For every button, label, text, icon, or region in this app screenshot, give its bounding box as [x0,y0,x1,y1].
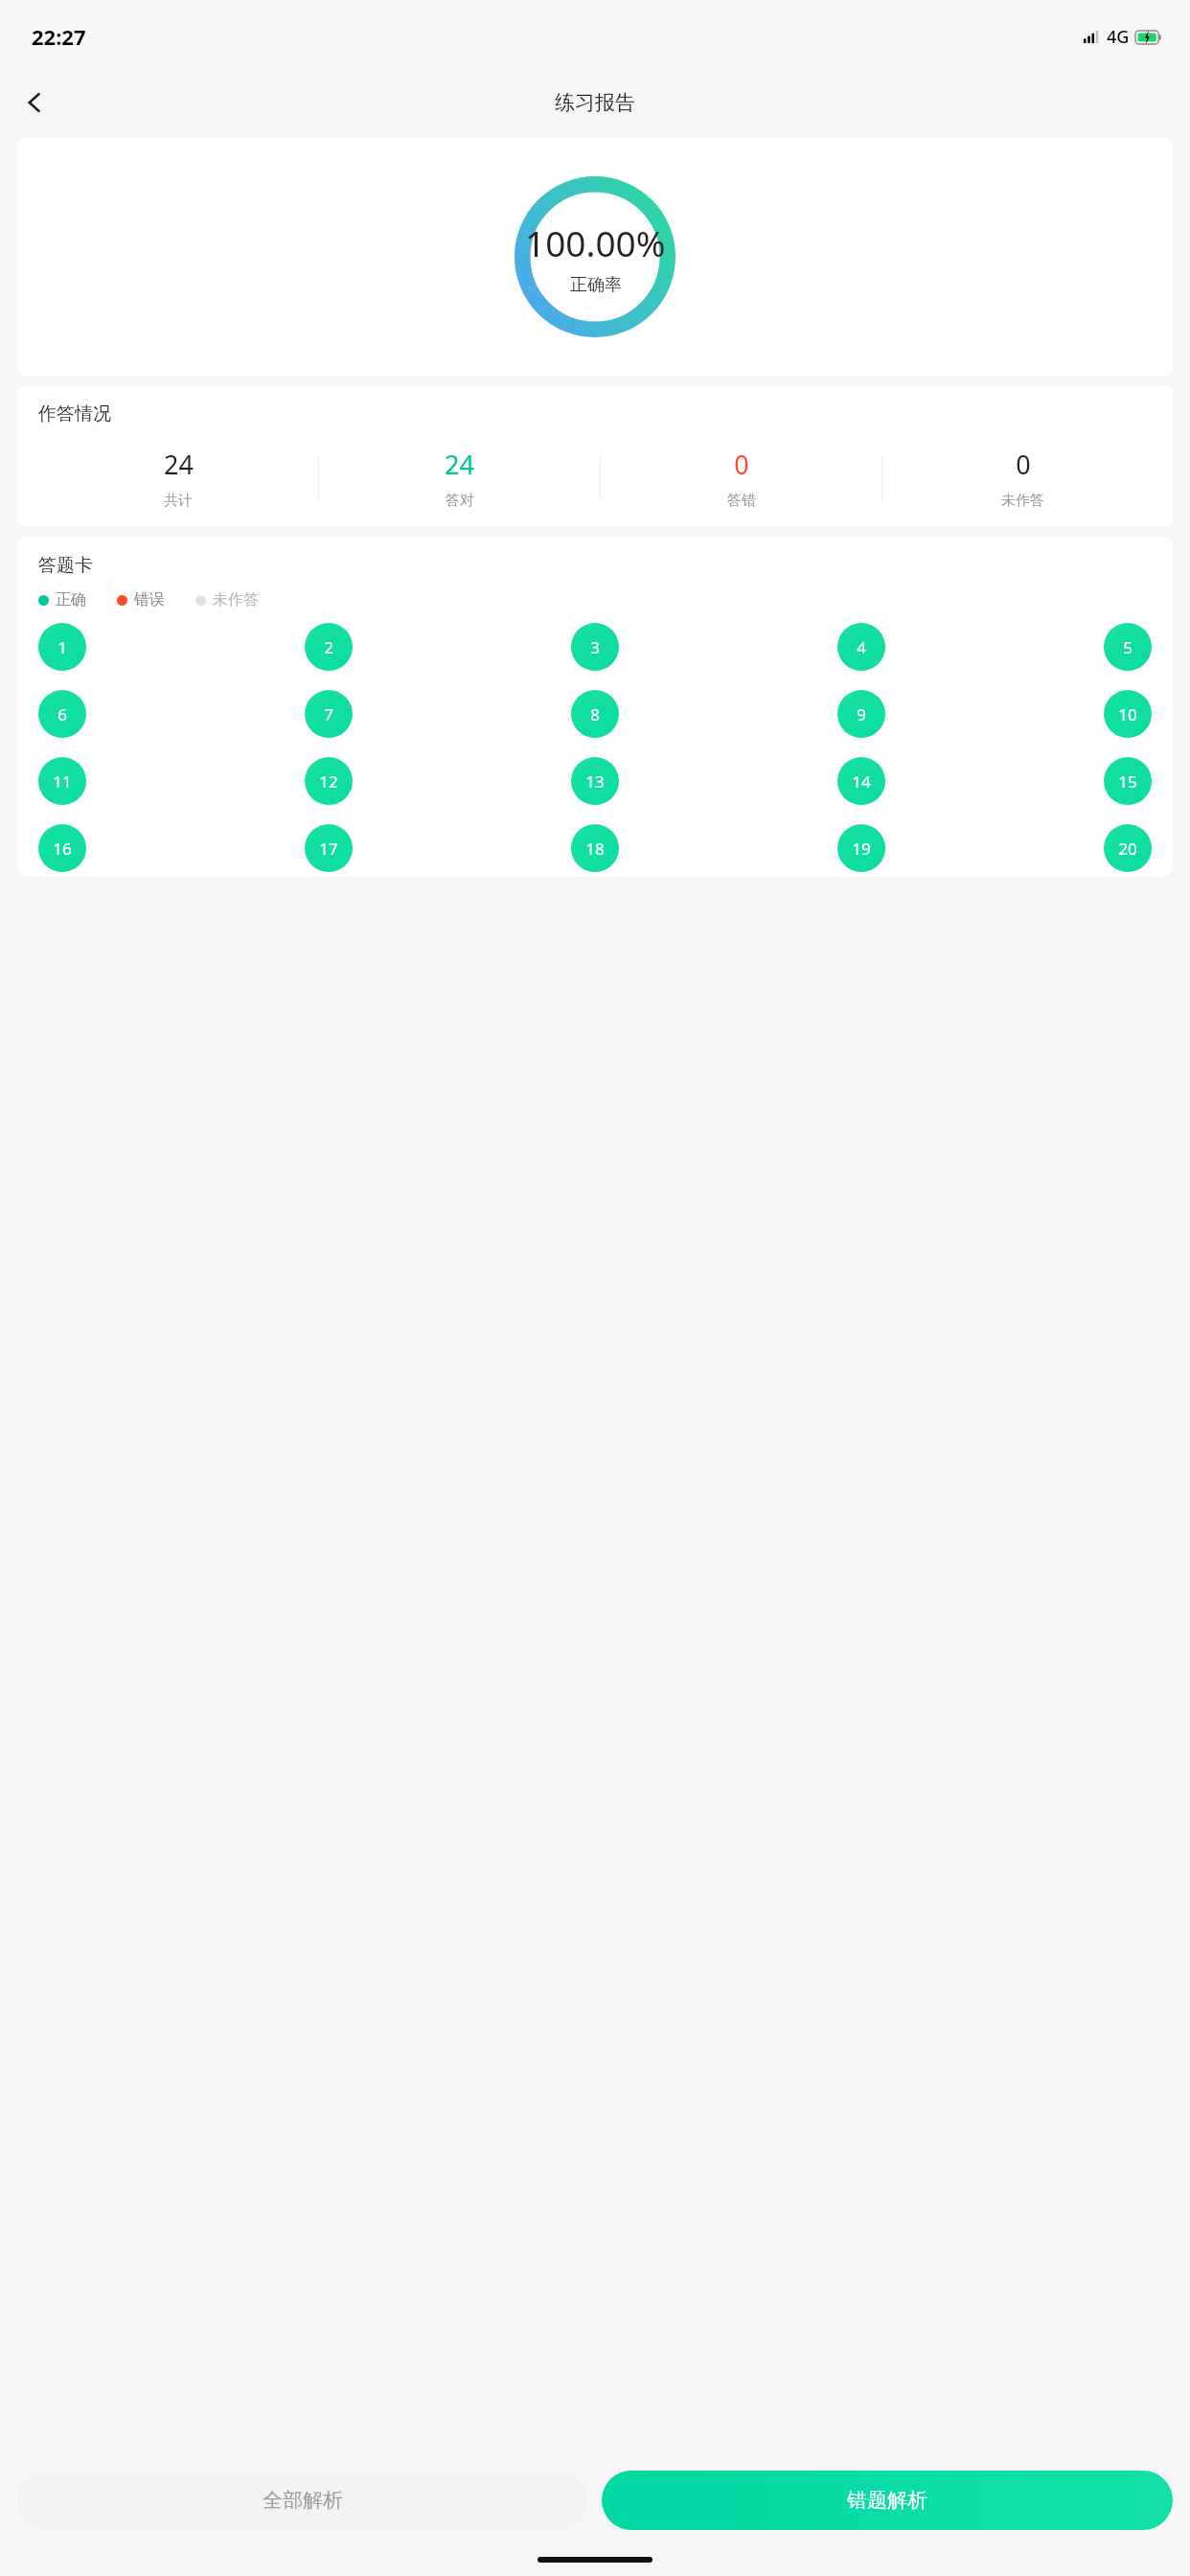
staticText: 20 [1118,838,1137,860]
staticText: 共计 [164,492,193,510]
staticText: 22:27 [32,22,86,51]
staticText: 0 [1016,447,1031,482]
staticText: 18 [585,838,605,860]
button[interactable]: 9 [837,690,885,738]
button[interactable]: 错题解析 [602,2471,1173,2530]
button[interactable]: 14 [837,757,885,805]
staticText: 14 [852,770,871,793]
staticText: 未作答 [213,590,259,609]
staticText: 5 [1123,636,1133,658]
staticText: 答对 [446,492,474,510]
button[interactable]: 全部解析 [17,2471,588,2530]
staticText: 17 [319,838,338,860]
staticText: 11 [53,770,72,793]
staticText: 12 [319,770,338,793]
staticText: 9 [857,703,866,725]
staticText: 24 [445,447,474,482]
button[interactable]: 3 [571,623,619,671]
button[interactable]: 15 [1104,757,1152,805]
staticText: 2 [324,636,333,658]
button[interactable]: 2 [305,623,353,671]
staticText: 10 [1118,703,1137,725]
staticText: 8 [590,703,600,725]
staticText: 错误 [134,590,165,609]
staticText: 7 [324,703,333,725]
staticText: 答题卡 [38,554,93,577]
staticText: 13 [585,770,605,793]
button[interactable]: 16 [38,824,86,872]
staticText: 15 [1118,770,1137,793]
staticText: 100.00% [525,218,666,266]
button[interactable]: 11 [38,757,86,805]
button[interactable]: 5 [1104,623,1152,671]
staticText: 4G [1107,25,1130,49]
staticText: 全部解析 [263,2488,343,2513]
staticText: 正确率 [570,274,622,296]
button[interactable]: 19 [837,824,885,872]
button[interactable]: 17 [305,824,353,872]
button[interactable]: 10 [1104,690,1152,738]
staticText: 4 [857,636,866,658]
staticText: 1 [57,636,67,658]
button[interactable]: 4 [837,623,885,671]
button[interactable]: 6 [38,690,86,738]
button[interactable]: 8 [571,690,619,738]
button[interactable]: Back [8,76,61,129]
staticText: 24 [164,447,194,482]
button[interactable]: 1 [38,623,86,671]
button[interactable]: 13 [571,757,619,805]
staticText: 19 [852,838,871,860]
staticText: 16 [53,838,72,860]
staticText: 错题解析 [847,2488,927,2513]
staticText: 正确 [56,590,86,609]
button[interactable]: 20 [1104,824,1152,872]
staticText: 0 [734,447,749,482]
staticText: 练习报告 [555,90,635,115]
button[interactable]: 12 [305,757,353,805]
staticText: 6 [57,703,67,725]
button[interactable]: 18 [571,824,619,872]
staticText: 3 [590,636,600,658]
staticText: 答错 [727,492,756,510]
staticText: 作答情况 [38,402,111,425]
button[interactable]: 7 [305,690,353,738]
staticText: 未作答 [1001,492,1044,510]
